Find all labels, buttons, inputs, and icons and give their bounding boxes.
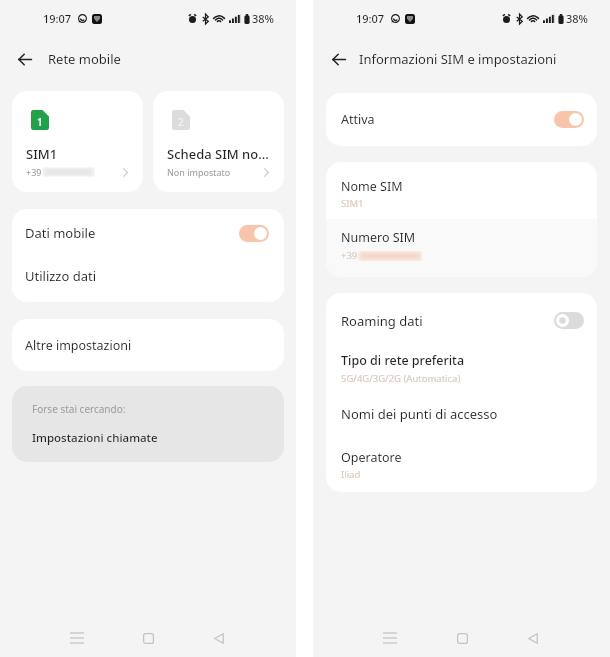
button[interactable]: Nomi dei punti di accesso xyxy=(326,392,597,436)
staticText: Numero SIM xyxy=(341,229,416,246)
staticText: +39 xyxy=(26,166,42,178)
button[interactable]: Home xyxy=(445,625,479,651)
staticText: Utilizzo dati xyxy=(25,267,97,285)
button[interactable]: 2 xyxy=(153,91,284,192)
button[interactable]: Altre impostazioni xyxy=(12,319,284,371)
button[interactable]: Forse stai cercando: xyxy=(12,386,284,462)
staticText: 1 xyxy=(37,115,43,129)
button[interactable]: Back xyxy=(10,44,40,74)
staticText: Nomi dei punti di accesso xyxy=(341,405,498,423)
button[interactable]: Roaming dati xyxy=(326,293,597,348)
button[interactable]: Operatore xyxy=(326,436,597,491)
button[interactable]: Numero SIM xyxy=(326,219,597,277)
staticText: 19:07 xyxy=(356,11,385,26)
button[interactable]: Attiva xyxy=(326,93,597,146)
staticText: Non impostato xyxy=(167,166,231,178)
staticText: Rete mobile xyxy=(48,50,121,68)
button[interactable]: Home xyxy=(131,625,165,651)
button[interactable]: Utilizzo dati xyxy=(12,253,284,298)
staticText: Scheda SIM no... xyxy=(167,145,284,163)
staticText: Informazioni SIM e impostazioni xyxy=(359,50,557,68)
staticText: Tipo di rete preferita xyxy=(341,352,465,369)
button[interactable]: Nome SIM xyxy=(326,162,597,219)
staticText: 38% xyxy=(566,11,588,26)
button[interactable]: Back xyxy=(516,625,550,651)
staticText: SIM1 xyxy=(341,197,364,210)
staticText: Attiva xyxy=(341,111,375,128)
button[interactable]: 1 xyxy=(12,91,143,192)
staticText: Forse stai cercando: xyxy=(32,402,126,416)
button[interactable]: Recent apps xyxy=(373,625,407,651)
button[interactable]: Back xyxy=(324,44,354,74)
staticText: Nome SIM xyxy=(341,178,403,195)
staticText: 2 xyxy=(178,115,184,129)
staticText: 5G/4G/3G/2G (Automatica) xyxy=(341,372,461,385)
staticText: Roaming dati xyxy=(341,312,423,330)
staticText: 19:07 xyxy=(43,11,72,26)
button[interactable]: Back xyxy=(202,625,236,651)
button[interactable]: Tipo di rete preferita xyxy=(326,348,597,386)
button[interactable]: On xyxy=(554,111,584,128)
staticText: SIM1 xyxy=(26,145,143,163)
staticText: Iliad xyxy=(341,468,361,481)
staticText: Altre impostazioni xyxy=(25,337,132,354)
staticText: Dati mobile xyxy=(25,224,96,242)
button[interactable]: Dati mobile xyxy=(12,209,284,257)
staticText: Operatore xyxy=(341,449,402,466)
button[interactable]: On xyxy=(239,225,269,242)
staticText: Impostazioni chiamate xyxy=(32,430,158,446)
button[interactable]: Off xyxy=(554,312,584,329)
button[interactable]: Recent apps xyxy=(60,625,94,651)
staticText: 38% xyxy=(252,11,274,26)
staticText: +39 xyxy=(341,249,358,262)
